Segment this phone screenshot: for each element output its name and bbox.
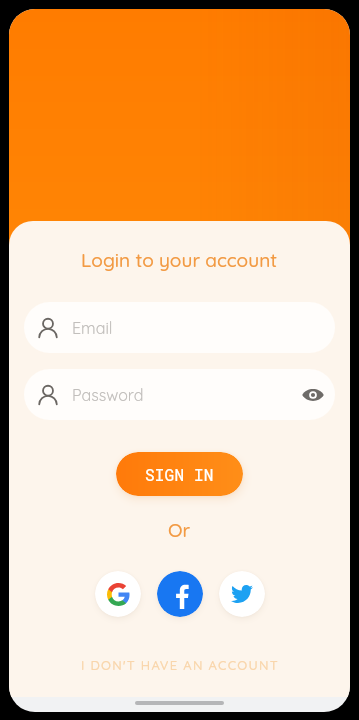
button[interactable]: Sign in with Twitter — [219, 571, 265, 617]
staticText: SIGN IN — [145, 464, 214, 485]
button[interactable]: Show password — [300, 382, 326, 408]
button[interactable]: Sign in with Facebook — [157, 571, 203, 617]
button[interactable]: Password — [24, 369, 335, 420]
staticText: I DON'T HAVE AN ACCOUNT — [81, 657, 279, 673]
staticText: Password — [72, 385, 144, 405]
button[interactable]: Sign in with Google — [95, 571, 141, 617]
button[interactable]: SIGN IN — [116, 452, 243, 496]
button[interactable]: I DON'T HAVE AN ACCOUNT — [69, 649, 291, 681]
staticText: Email — [72, 318, 113, 338]
button[interactable]: Email — [24, 302, 335, 353]
staticText: Or — [168, 518, 191, 542]
staticText: Login to your account — [81, 248, 278, 272]
